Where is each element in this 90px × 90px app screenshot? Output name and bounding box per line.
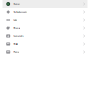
button[interactable]: Photos <box>0 48 90 56</box>
staticText: Memoji <box>13 27 19 29</box>
button[interactable]: Avatars <box>0 0 90 8</box>
button[interactable]: Memoji <box>0 24 90 32</box>
button[interactable]: Links <box>0 16 90 24</box>
staticText: Links <box>13 19 17 21</box>
staticText: Avatars <box>13 3 20 5</box>
button[interactable]: Verified accounts <box>0 8 90 16</box>
staticText: Verified accounts <box>13 11 27 13</box>
staticText: Photos <box>13 51 19 53</box>
staticText: Contact info <box>13 35 23 37</box>
button[interactable]: Contact info <box>0 32 90 40</box>
staticText: Wallet <box>13 43 18 45</box>
button[interactable]: Wallet <box>0 40 90 48</box>
